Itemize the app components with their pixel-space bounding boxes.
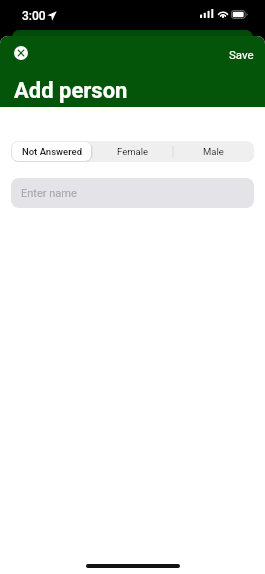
button[interactable]: Enter name bbox=[11, 178, 254, 208]
button[interactable]: Male bbox=[174, 142, 253, 161]
staticText: 3:00 bbox=[22, 9, 46, 23]
staticText: Male bbox=[203, 146, 224, 157]
staticText: Not Answered bbox=[22, 146, 82, 157]
button[interactable]: Close bbox=[14, 46, 28, 60]
button[interactable]: Save bbox=[225, 45, 258, 64]
staticText: Save bbox=[229, 48, 254, 61]
staticText: Enter name bbox=[21, 187, 77, 200]
staticText: Female bbox=[117, 146, 149, 157]
button[interactable]: Female bbox=[93, 142, 172, 161]
button[interactable]: Not Answered bbox=[12, 142, 91, 161]
staticText: Add person bbox=[14, 78, 128, 104]
